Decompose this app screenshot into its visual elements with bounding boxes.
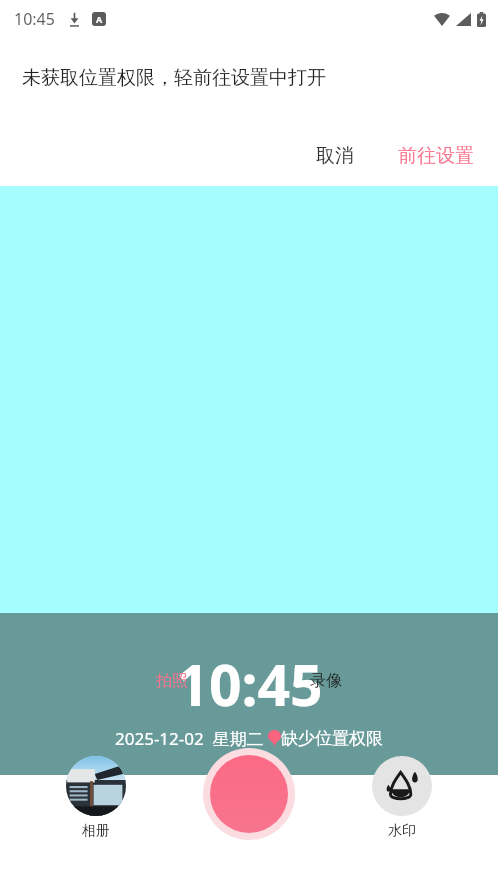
button[interactable]: Watermark <box>368 752 436 844</box>
staticText: 10:45 <box>14 8 55 30</box>
staticText: 未获取位置权限，轻前往设置中打开 <box>22 66 326 90</box>
staticText: 水印 <box>388 822 416 840</box>
staticText: 拍照 <box>156 671 188 691</box>
staticText: 前往设置 <box>398 144 474 168</box>
button[interactable]: 录像 <box>304 669 348 693</box>
button[interactable]: Shutter <box>203 748 295 840</box>
staticText: 取消 <box>316 144 354 168</box>
staticText: 相册 <box>82 822 110 840</box>
staticText: 缺少位置权限 <box>281 728 383 749</box>
button[interactable]: 取消 <box>306 138 364 174</box>
button[interactable]: 拍照 <box>150 669 194 693</box>
staticText: 2025-12-02 星期二 <box>115 727 268 750</box>
staticText: 10:45 <box>176 645 323 723</box>
button[interactable]: 相册 <box>62 752 130 844</box>
button[interactable]: 前往设置 <box>392 138 480 174</box>
other: Watermark <box>372 756 432 816</box>
staticText: 录像 <box>310 671 342 691</box>
staticText: A <box>96 13 103 25</box>
